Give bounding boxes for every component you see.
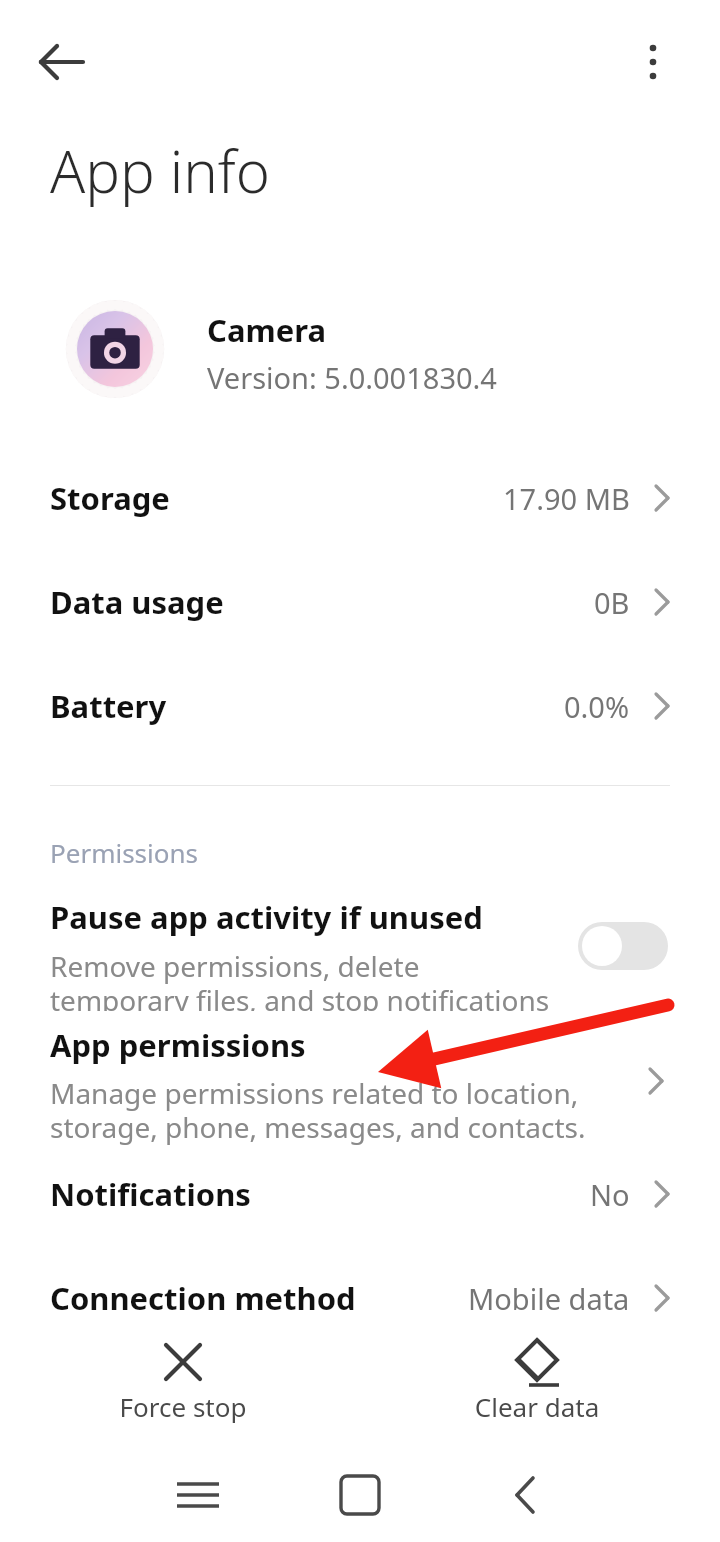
button[interactable]: Clear data (414, 1335, 660, 1425)
button[interactable]: Force stop (60, 1335, 306, 1425)
button[interactable]: App permissions (0, 1018, 720, 1140)
staticText: Remove permissions, delete temporary fil… (50, 947, 550, 1011)
staticText: Pause app activity if unused (50, 896, 483, 938)
staticText: Permissions (50, 835, 199, 870)
button[interactable]: Pause app activity if unused toggle (578, 922, 668, 970)
staticText: 17.90 MB (503, 479, 630, 518)
button[interactable]: Battery (0, 663, 720, 749)
button[interactable]: Storage (0, 455, 720, 541)
staticText: Connection method (50, 1277, 356, 1319)
button[interactable]: Connection method (0, 1255, 720, 1341)
button[interactable]: More options (621, 30, 685, 94)
staticText: Mobile data (468, 1279, 630, 1318)
staticText: Notifications (50, 1173, 251, 1215)
staticText: No (590, 1175, 630, 1214)
staticText: Camera (207, 309, 327, 351)
staticText: Force stop (60, 1389, 306, 1424)
staticText: Battery (50, 685, 167, 727)
staticText: App permissions (50, 1024, 306, 1066)
staticText: Storage (50, 477, 170, 519)
button[interactable]: Data usage (0, 559, 720, 645)
staticText: 0B (594, 583, 630, 622)
staticText: Clear data (414, 1389, 660, 1424)
button[interactable]: Back (457, 1455, 593, 1535)
button[interactable]: Notifications (0, 1151, 720, 1237)
button[interactable]: Pause app activity if unused (0, 888, 720, 1003)
button[interactable]: Home (292, 1455, 428, 1535)
staticText: Manage permissions related to location, … (50, 1074, 630, 1146)
button[interactable]: Recent apps (130, 1455, 266, 1535)
staticText: App info (50, 131, 270, 210)
button[interactable]: Back (30, 30, 94, 94)
staticText: 0.0% (564, 687, 630, 726)
staticText: Version: 5.0.001830.4 (207, 358, 497, 397)
staticText: Data usage (50, 581, 224, 623)
